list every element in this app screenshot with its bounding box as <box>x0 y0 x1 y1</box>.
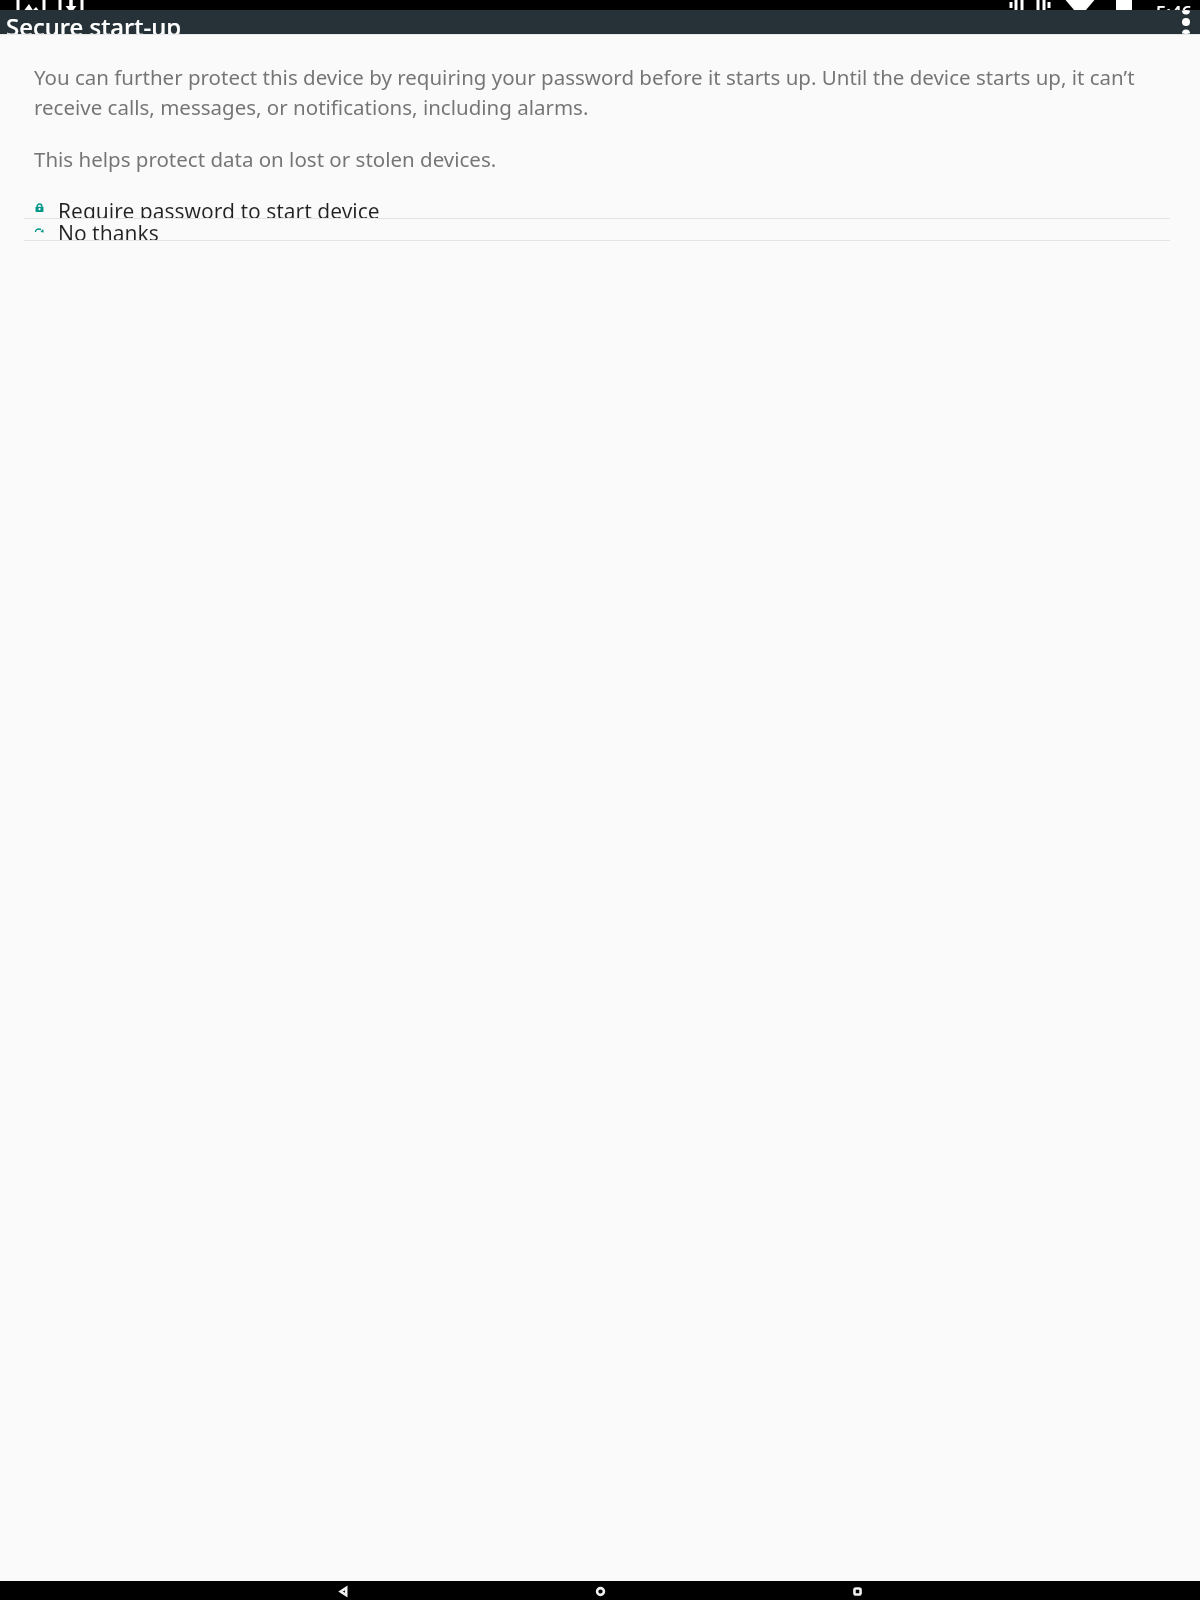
button[interactable]: Back <box>336 1584 350 1598</box>
button[interactable]: Home <box>593 1584 607 1598</box>
other: Lock <box>34 202 45 213</box>
button[interactable]: Lock <box>0 197 1200 218</box>
button[interactable]: Recent apps <box>850 1584 864 1598</box>
staticText: This helps protect data on lost or stole… <box>34 145 497 173</box>
staticText: 5:46 <box>1156 0 1192 10</box>
button[interactable]: More options <box>1174 10 1198 34</box>
staticText: Secure start-up <box>6 10 182 34</box>
button[interactable]: Skip <box>0 219 1200 240</box>
staticText: You can further protect this device by r… <box>34 63 1154 121</box>
staticText: No thanks <box>58 219 159 240</box>
staticText: Require password to start device <box>58 197 380 218</box>
other: Skip <box>34 224 45 235</box>
